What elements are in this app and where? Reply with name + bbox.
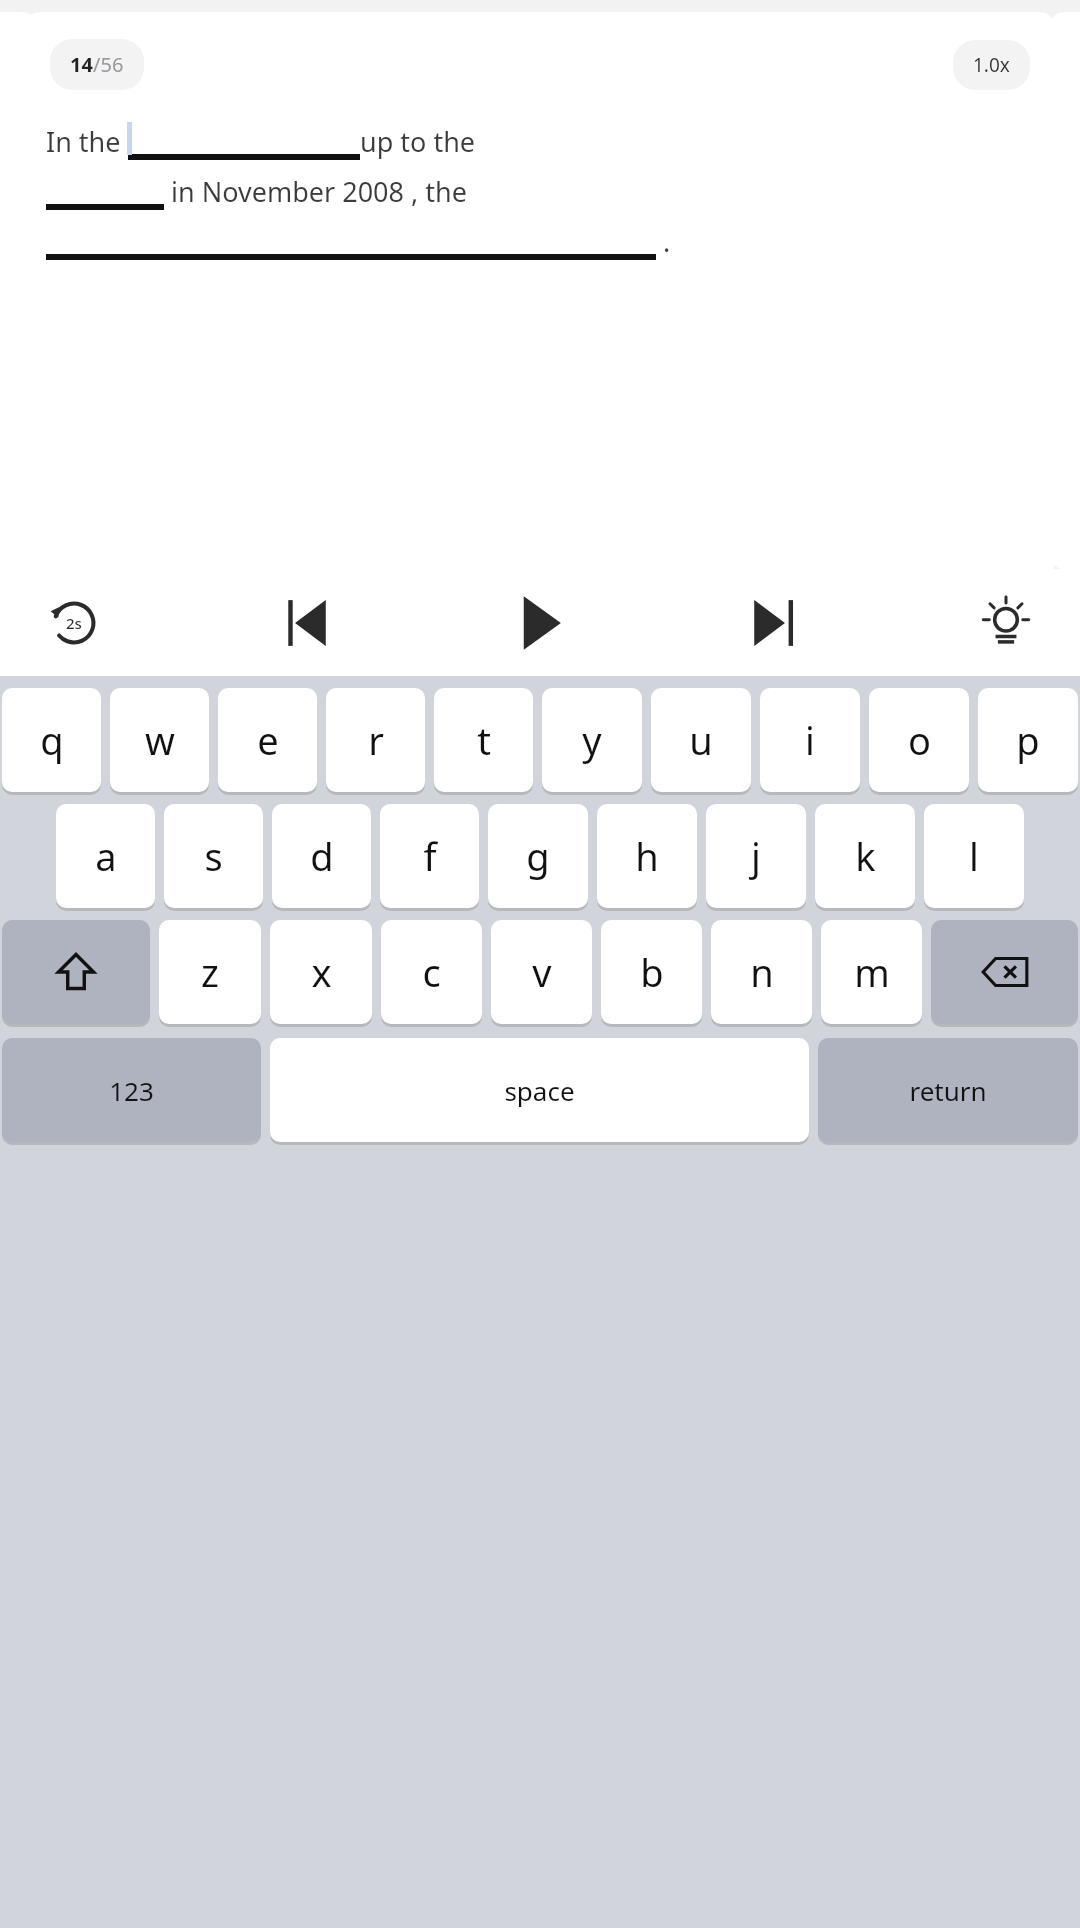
button[interactable]: c (381, 920, 482, 1024)
button[interactable]: d (272, 804, 371, 908)
button[interactable]: Rewind 2 seconds (26, 569, 122, 676)
staticText: w (145, 714, 175, 766)
staticText: f (423, 830, 437, 882)
staticText: In the (46, 123, 128, 160)
staticText: r (368, 714, 384, 766)
button[interactable]: space (270, 1038, 809, 1142)
staticText: t (477, 714, 491, 766)
staticText: 1.0x (973, 52, 1010, 78)
staticText: in November 2008 , the (164, 173, 467, 210)
button[interactable]: 14 (26, 12, 1054, 569)
button[interactable]: Previous (259, 569, 355, 676)
staticText: s (204, 830, 223, 882)
button[interactable]: y (542, 688, 642, 792)
button[interactable]: Hint (958, 569, 1054, 676)
staticText: h (635, 830, 659, 882)
button[interactable]: k (815, 804, 915, 908)
staticText: i (805, 714, 815, 766)
staticText: space (504, 1073, 575, 1108)
button[interactable]: 123 (2, 1038, 261, 1142)
button[interactable]: t (434, 688, 533, 792)
button[interactable]: z (159, 920, 261, 1024)
staticText: c (422, 946, 441, 998)
button[interactable]: return (818, 1038, 1078, 1142)
staticText: v (532, 946, 552, 998)
button[interactable]: f (380, 804, 479, 908)
staticText: y (582, 714, 602, 766)
staticText: q (40, 714, 64, 766)
staticText: d (310, 830, 334, 882)
staticText: . (656, 223, 671, 260)
button[interactable]: Backspace (931, 920, 1078, 1024)
button[interactable]: Shift (2, 920, 150, 1024)
staticText: m (854, 946, 890, 998)
button[interactable]: e (218, 688, 317, 792)
button[interactable]: n (711, 920, 812, 1024)
button[interactable]: p (978, 688, 1078, 792)
staticText: 14 (70, 51, 93, 78)
staticText: b (640, 946, 664, 998)
button[interactable]: q (2, 688, 101, 792)
staticText: p (1016, 714, 1040, 766)
button[interactable]: s (164, 804, 263, 908)
staticText: l (969, 830, 979, 882)
staticText: return (909, 1073, 987, 1108)
button[interactable]: i (760, 688, 860, 792)
staticText: u (689, 714, 713, 766)
staticText: n (750, 946, 774, 998)
button[interactable]: h (597, 804, 697, 908)
staticText: o (908, 714, 931, 766)
staticText: 2s (66, 613, 82, 633)
button[interactable]: In the (46, 120, 1034, 270)
button[interactable]: m (821, 920, 922, 1024)
button[interactable]: x (270, 920, 372, 1024)
button[interactable]: 1.0x (953, 40, 1030, 90)
staticText: z (201, 946, 219, 998)
staticText: up to the (360, 123, 476, 160)
button[interactable]: w (110, 688, 209, 792)
button[interactable]: a (56, 804, 155, 908)
staticText: j (751, 830, 761, 882)
button[interactable]: b (601, 920, 702, 1024)
staticText: /56 (93, 51, 124, 78)
button[interactable]: 14 (50, 39, 144, 90)
button[interactable]: j (706, 804, 806, 908)
button[interactable]: l (924, 804, 1024, 908)
staticText: 123 (109, 1073, 154, 1108)
button[interactable]: u (651, 688, 751, 792)
button[interactable]: o (869, 688, 969, 792)
staticText: g (526, 830, 550, 882)
button[interactable]: Play (492, 569, 588, 676)
staticText: x (311, 946, 332, 998)
button[interactable]: v (491, 920, 592, 1024)
button[interactable]: g (488, 804, 588, 908)
button[interactable]: Next (725, 569, 821, 676)
staticText: e (257, 714, 279, 766)
staticText: k (855, 830, 876, 882)
button[interactable]: r (326, 688, 425, 792)
staticText: a (95, 830, 117, 882)
